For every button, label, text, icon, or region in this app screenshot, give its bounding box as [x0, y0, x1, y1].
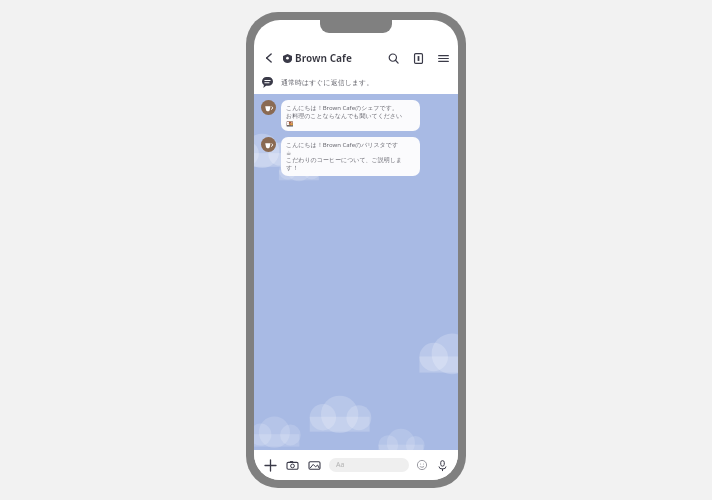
staticText: す！	[286, 164, 299, 172]
button[interactable]: Aa	[329, 458, 409, 472]
button[interactable]: Keypad	[410, 50, 426, 66]
button[interactable]: Search	[385, 50, 401, 66]
button[interactable]: Back	[261, 50, 277, 66]
staticText: Brown Cafe	[295, 51, 352, 65]
button[interactable]: Menu	[435, 50, 451, 66]
button[interactable]: Profile	[261, 100, 276, 115]
button[interactable]: こんにちは！Brown Cafeのバリスタです	[281, 137, 420, 176]
staticText: お料理のことならなんでも聞いてください	[286, 112, 403, 120]
staticText: 🍱	[286, 120, 294, 127]
staticText: こんにちは！Brown Cafeのバリスタです	[286, 141, 399, 149]
staticText: ☕	[286, 149, 292, 156]
staticText: こだわりのコーヒーについて、ご説明しま	[286, 156, 402, 164]
button[interactable]: Profile	[261, 137, 276, 152]
button[interactable]: Voice message	[434, 457, 450, 473]
button[interactable]: Add	[262, 457, 278, 473]
button[interactable]: Emoji	[414, 457, 430, 473]
staticText: Aa	[336, 460, 345, 470]
button[interactable]: Gallery	[306, 457, 322, 473]
button[interactable]: こんにちは！Brown Cafeのシェフです。	[281, 100, 420, 131]
staticText: 通常時はすぐに返信します。	[281, 78, 374, 87]
button[interactable]: Camera	[284, 457, 300, 473]
staticText: こんにちは！Brown Cafeのシェフです。	[286, 104, 398, 112]
